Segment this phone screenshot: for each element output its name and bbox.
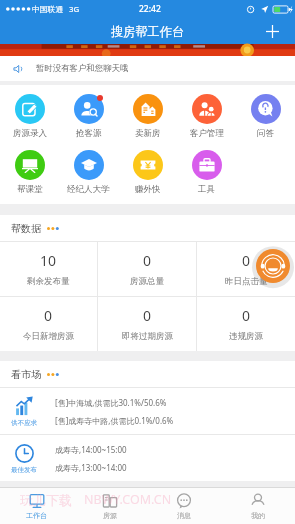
staticText: 成寿寺,14:00~15:00 <box>55 444 127 455</box>
staticText: 搜房帮工作台 <box>111 24 185 39</box>
staticText: 22:42 <box>139 3 161 15</box>
staticText: 赚外快 <box>135 184 161 195</box>
button[interactable]: 卖新房 <box>118 94 177 139</box>
button[interactable]: 0 <box>197 242 295 296</box>
button[interactable]: 问答 <box>236 94 295 139</box>
staticText: 违规房源 <box>229 331 263 342</box>
staticText: 帮课堂 <box>17 184 43 195</box>
staticText: NBWY.COM.CN <box>84 491 172 508</box>
staticText: 0 <box>242 251 251 270</box>
staticText: 工作台 <box>26 511 47 520</box>
staticText: 剩余发布量 <box>27 276 70 287</box>
staticText: [售]中海城,供需比30.1%/50.6% <box>55 397 167 408</box>
staticText: 中国联通 <box>32 4 64 14</box>
staticText: [售]成寿寺中路,供需比0.1%/0.6% <box>55 415 174 426</box>
button[interactable]: 消息 <box>147 488 221 524</box>
staticText: 暂时没有客户和您聊天哦 <box>36 63 129 74</box>
button[interactable]: 0 <box>98 242 196 296</box>
staticText: 我的 <box>251 511 265 520</box>
staticText: 昨日点击量 <box>225 276 268 287</box>
staticText: 客户管理 <box>190 128 224 139</box>
staticText: 最佳发布 <box>11 466 37 474</box>
staticText: 0 <box>143 251 152 270</box>
staticText: 帮数据 <box>11 222 41 235</box>
staticText: 问答 <box>257 128 274 139</box>
staticText: 消息 <box>177 511 191 520</box>
staticText: 抢客源 <box>76 128 102 139</box>
button[interactable]: 房源 <box>73 488 147 524</box>
button[interactable]: 0 <box>197 297 295 351</box>
button[interactable]: 供不应求 <box>0 388 295 434</box>
staticText: 房源 <box>103 511 117 520</box>
button[interactable]: 经纪人大学 <box>59 150 118 195</box>
staticText: 经纪人大学 <box>67 184 110 195</box>
button[interactable]: 最佳发布 <box>0 435 295 481</box>
staticText: 0 <box>242 306 251 325</box>
staticText: 0 <box>44 306 53 325</box>
staticText: 今日新增房源 <box>23 331 74 342</box>
staticText: 0 <box>143 306 152 325</box>
staticText: 即将过期房源 <box>122 331 173 342</box>
button[interactable]: 工具 <box>177 150 236 195</box>
button[interactable]: 抢客源 <box>59 94 118 139</box>
button[interactable]: 我的 <box>221 488 295 524</box>
staticText: 3G <box>69 4 80 15</box>
button[interactable]: 0 <box>0 297 97 351</box>
staticText: 房源总量 <box>130 276 164 287</box>
staticText: 看市场 <box>11 368 41 381</box>
staticText: 成寿寺,13:00~14:00 <box>55 462 127 473</box>
button[interactable]: Customer service <box>256 249 290 283</box>
staticText: 供不应求 <box>11 419 37 427</box>
staticText: 玩儿下载 <box>20 492 72 508</box>
button[interactable]: 客户管理 <box>177 94 236 139</box>
button[interactable]: 工作台 <box>0 488 73 524</box>
button[interactable]: Promotion banner <box>0 44 295 56</box>
button[interactable]: 帮课堂 <box>0 150 59 195</box>
button[interactable]: 10 <box>0 242 97 296</box>
staticText: 房源录入 <box>13 128 47 139</box>
button[interactable]: 暂时没有客户和您聊天哦 <box>0 56 295 81</box>
button[interactable]: 房源录入 <box>0 94 59 139</box>
staticText: 10 <box>40 251 57 270</box>
button[interactable]: 0 <box>98 297 196 351</box>
button[interactable]: Add <box>259 18 285 44</box>
staticText: 卖新房 <box>135 128 161 139</box>
button[interactable]: 赚外快 <box>118 150 177 195</box>
staticText: 工具 <box>198 184 215 195</box>
